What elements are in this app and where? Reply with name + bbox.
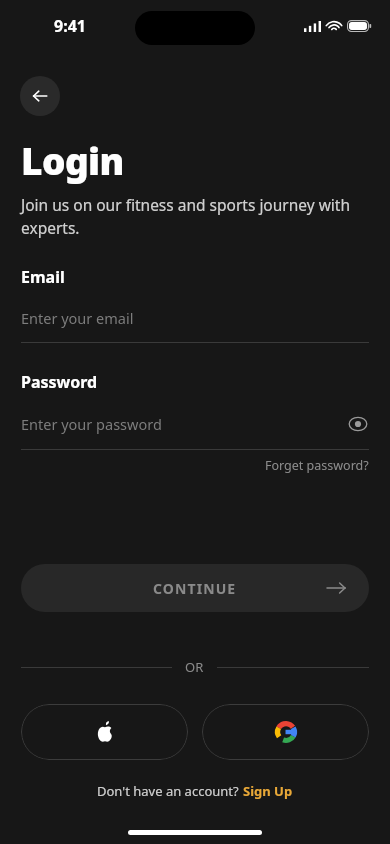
staticText: Join us on our fitness and sports journe…: [21, 194, 369, 239]
staticText: CONTINUE: [153, 579, 237, 598]
staticText: Don't have an account?: [97, 782, 243, 800]
staticText: Login: [21, 135, 124, 185]
staticText: Forget password?: [265, 457, 369, 474]
staticText: Enter your password: [21, 414, 347, 434]
button[interactable]: CONTINUE: [21, 564, 369, 612]
staticText: OR: [185, 658, 204, 676]
button[interactable]: Sign Up: [243, 782, 293, 800]
staticText: Sign Up: [243, 782, 293, 800]
button[interactable]: Sign in with Google: [202, 704, 369, 760]
button[interactable]: Forget password?: [265, 457, 369, 474]
button[interactable]: Show password: [347, 413, 369, 435]
button[interactable]: Enter your email: [21, 308, 369, 343]
staticText: Password: [21, 371, 98, 393]
button[interactable]: Enter your password: [21, 413, 369, 450]
button[interactable]: Sign in with Apple: [21, 704, 188, 760]
staticText: Enter your email: [21, 308, 369, 328]
staticText: 9:41: [54, 15, 86, 37]
button[interactable]: Back: [20, 76, 60, 116]
staticText: Email: [21, 266, 65, 288]
